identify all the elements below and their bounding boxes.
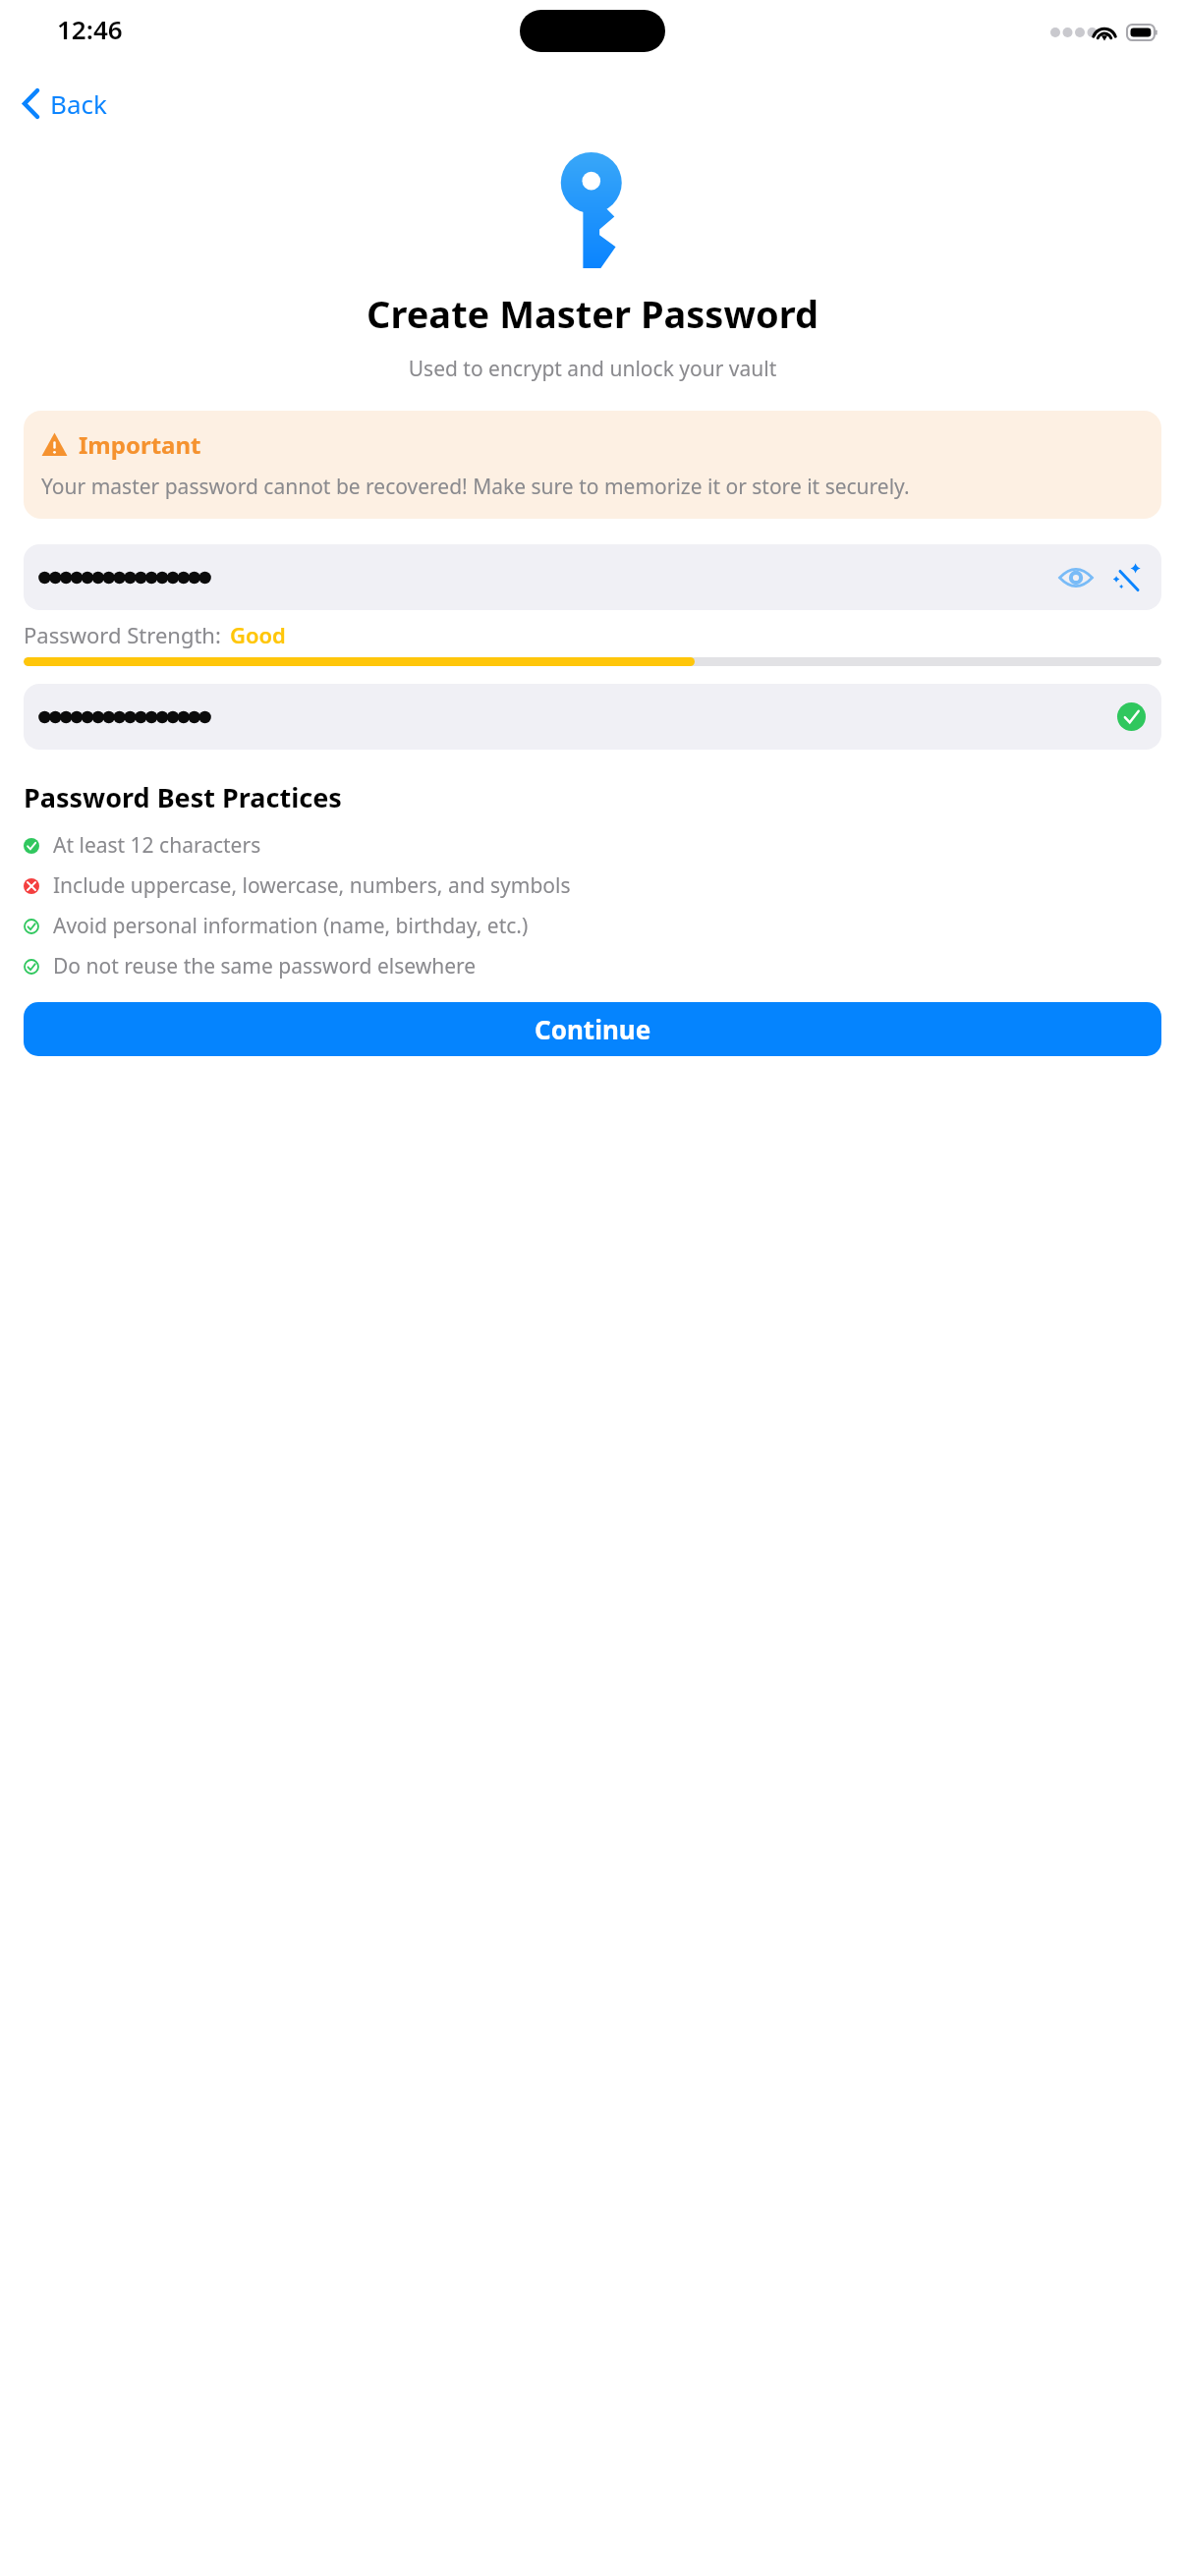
button[interactable] [24, 684, 1161, 750]
button[interactable]: Show password [24, 544, 1161, 610]
staticText: Password Best Practices [24, 779, 342, 815]
staticText: Your master password cannot be recovered… [41, 473, 1144, 501]
staticText: Good [230, 620, 286, 649]
button[interactable]: Generate password [1106, 558, 1146, 597]
staticText: Do not reuse the same password elsewhere [53, 952, 477, 980]
staticText: Continue [535, 1012, 651, 1046]
staticText: Password Strength: [24, 620, 221, 649]
button[interactable]: Back [18, 81, 113, 127]
staticText: Avoid personal information (name, birthd… [53, 912, 529, 940]
button[interactable]: Show password [1053, 561, 1099, 594]
staticText: Used to encrypt and unlock your vault [0, 355, 1185, 383]
staticText: Create Master Password [0, 288, 1185, 339]
button[interactable]: Continue [24, 1002, 1161, 1056]
staticText: 12:46 [57, 12, 123, 46]
staticText: Back [50, 86, 107, 121]
staticText: Important [79, 428, 201, 461]
staticText: At least 12 characters [53, 831, 261, 860]
staticText: Include uppercase, lowercase, numbers, a… [53, 871, 571, 900]
